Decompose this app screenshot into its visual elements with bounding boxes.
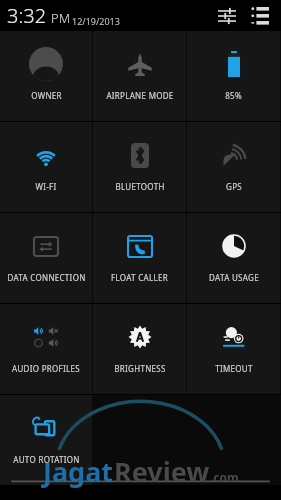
button[interactable]: GPS [187,122,280,212]
button[interactable]: BLUETOOTH [93,122,186,212]
button[interactable]: BRIGHTNESS [93,304,186,394]
staticText: BRIGHTNESS [114,363,166,374]
button[interactable]: 85% [187,31,280,121]
button[interactable]: TIMEOUT [187,304,280,394]
staticText: PM [51,9,70,27]
button[interactable]: AUDIO PROFILES [0,304,92,394]
staticText: GPS [226,181,242,192]
staticText: BLUETOOTH [115,181,165,192]
staticText: Review [114,453,210,490]
staticText: 85% [225,90,242,101]
staticText: DATA CONNECTION [7,272,86,283]
staticText: OWNER [31,90,62,101]
staticText: .com [210,469,239,485]
button[interactable]: FLOAT CALLER [93,213,186,303]
button[interactable]: WI-FI [0,122,92,212]
staticText: 3:32 [7,2,47,29]
staticText: AUTO ROTATION [13,454,80,465]
staticText: 12/19/2013 [72,15,120,27]
button[interactable]: AUTO ROTATION [0,395,92,485]
staticText: TIMEOUT [215,363,253,374]
staticText: Jagat [43,453,114,490]
button[interactable]: DATA CONNECTION [0,213,92,303]
staticText: DATA USAGE [209,272,259,283]
button[interactable]: Settings [214,3,240,29]
staticText: AIRPLANE MODE [106,90,174,101]
staticText: FLOAT CALLER [111,272,168,283]
staticText: AUDIO PROFILES [12,363,80,374]
button[interactable]: AIRPLANE MODE [93,31,186,121]
staticText: WI-FI [35,181,57,192]
button[interactable]: DATA USAGE [187,213,280,303]
button[interactable]: Notifications list [247,3,273,29]
button[interactable]: OWNER [0,31,92,121]
